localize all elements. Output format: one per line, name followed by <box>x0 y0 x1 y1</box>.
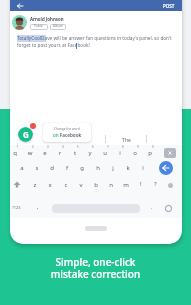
staticText: x <box>45 181 55 189</box>
staticText: 5 <box>77 145 79 149</box>
staticText: Simple, one-click <box>0 255 191 269</box>
staticText: ? <box>154 180 157 188</box>
staticText: z <box>30 181 40 189</box>
button[interactable] <box>30 24 48 30</box>
staticText: w <box>25 149 35 157</box>
button[interactable]: Change the word <box>43 123 91 142</box>
staticText: . <box>151 203 153 211</box>
staticText: on Facebook <box>53 132 82 138</box>
button[interactable] <box>12 15 27 30</box>
staticText: Public <box>34 24 44 28</box>
staticText: u <box>100 149 110 157</box>
staticText: f <box>62 164 72 172</box>
button[interactable] <box>159 161 173 175</box>
staticText: p <box>145 149 155 157</box>
staticText: q <box>10 149 20 157</box>
staticText: 8 <box>122 145 124 149</box>
staticText: m <box>121 181 131 189</box>
staticText: v <box>76 181 86 189</box>
staticText: Change the word <box>54 127 80 131</box>
staticText: ! <box>140 180 142 188</box>
staticText: 7 <box>107 145 109 149</box>
staticText: Arnold Johnson <box>30 16 64 22</box>
button[interactable]: G <box>18 127 33 142</box>
staticText: o <box>130 149 140 157</box>
staticText: The <box>122 136 132 143</box>
staticText: G <box>23 129 29 140</box>
staticText: d <box>47 164 57 172</box>
staticText: POST <box>163 3 175 9</box>
staticText: 1 <box>17 145 19 149</box>
staticText: s <box>32 164 42 172</box>
staticText: h <box>93 164 103 172</box>
staticText: 4 <box>62 145 64 149</box>
staticText: k <box>123 164 133 172</box>
staticText: t <box>70 149 80 157</box>
staticText: r <box>55 149 65 157</box>
staticText: l <box>138 164 148 172</box>
staticText: 0 <box>152 145 154 149</box>
staticText: 6 <box>92 145 94 149</box>
staticText: , <box>37 203 39 211</box>
staticText: a <box>17 164 27 172</box>
staticText: 2 <box>32 145 34 149</box>
staticText: n <box>106 181 116 189</box>
staticText: g <box>77 164 87 172</box>
button[interactable] <box>164 148 176 158</box>
staticText: j <box>108 164 118 172</box>
staticText: Album <box>53 24 63 28</box>
button[interactable] <box>10 0 182 11</box>
staticText: c <box>61 181 71 189</box>
staticText: e <box>40 149 50 157</box>
staticText: ?123 <box>12 205 21 210</box>
staticText: y <box>85 149 95 157</box>
staticText: mistake correction <box>0 267 191 281</box>
staticText: 3 <box>47 145 49 149</box>
staticText: 9 <box>137 145 139 149</box>
staticText: i <box>115 149 125 157</box>
staticText: forget to post yours at Facebook! <box>17 42 90 48</box>
staticText: b <box>91 181 101 189</box>
button[interactable] <box>50 24 66 30</box>
staticText: TotallyCoolDave will be answer fan quest… <box>17 35 172 41</box>
